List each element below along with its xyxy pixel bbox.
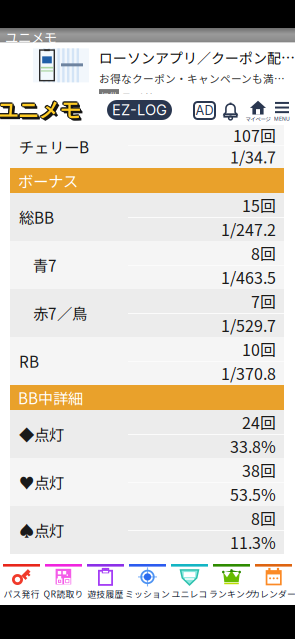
button[interactable]: カレンダー	[252, 557, 294, 605]
staticText: ユニメモ	[0, 96, 81, 122]
staticText: マイページ	[245, 115, 270, 123]
staticText: 15回	[242, 193, 276, 217]
staticText: パス発行	[3, 587, 39, 600]
button[interactable]: ミッション	[126, 557, 168, 605]
staticText: 総BB	[19, 206, 54, 228]
staticText: 11.3%	[230, 530, 276, 554]
button[interactable]: MENU	[271, 100, 293, 123]
staticText: ユニメモ	[0, 97, 81, 123]
button[interactable]: QR読取り	[42, 557, 84, 605]
staticText: 7回	[251, 289, 276, 313]
staticText: ユニメモ	[0, 98, 81, 124]
staticText: 提供	[101, 90, 117, 102]
staticText: 107回	[233, 123, 276, 147]
button[interactable]: マイページ	[243, 100, 273, 123]
button[interactable]: 107回	[10, 125, 284, 168]
staticText: ユニメモ	[0, 97, 82, 123]
staticText: 赤7／鳥	[33, 302, 87, 324]
button[interactable]: ユニレコ	[168, 557, 210, 605]
staticText: ユニメモ	[0, 96, 80, 122]
staticText: 38回	[242, 458, 276, 482]
staticText: 遊技履歴	[87, 587, 123, 600]
staticText: 1/370.8	[221, 361, 276, 385]
button[interactable]: ローソンアプリ／クーポン配…	[0, 46, 295, 94]
staticText: MENU	[274, 116, 290, 122]
staticText: ユニメモ	[0, 97, 80, 123]
button[interactable]: 10回	[10, 337, 284, 385]
staticText: 24回	[242, 410, 276, 434]
staticText: 8回	[251, 241, 276, 265]
button[interactable]: 24回	[10, 410, 284, 458]
button[interactable]: 8回	[10, 506, 284, 554]
button[interactable]: ユニメモ	[5, 98, 73, 122]
staticText: 1/247.2	[221, 217, 276, 241]
staticText: ♠点灯	[19, 519, 64, 541]
staticText: ユニメモ	[0, 98, 82, 124]
staticText: お得なクーポン・キャンペーンも満…	[99, 71, 285, 86]
staticText: RB	[19, 350, 39, 372]
staticText: ローソンアプリ／クーポン配…	[99, 47, 295, 68]
button[interactable]: Ad	[194, 102, 215, 119]
button[interactable]: 38回	[10, 458, 284, 506]
staticText: 1/463.5	[221, 265, 276, 289]
staticText: ♥点灯	[19, 471, 64, 493]
button[interactable]: 7回	[10, 289, 284, 337]
staticText: ランキング	[209, 587, 254, 600]
staticText: ローソン	[122, 90, 158, 102]
staticText: カレンダー	[251, 587, 295, 600]
button[interactable]: 8回	[10, 241, 284, 289]
button[interactable]: ランキング	[210, 557, 252, 605]
staticText: ユニレコ	[171, 587, 207, 600]
staticText: チェリーB	[19, 135, 89, 158]
staticText: ミッション	[125, 587, 170, 600]
button[interactable]: パス発行	[0, 557, 42, 605]
staticText: ユニメモ	[0, 100, 84, 126]
staticText: AD	[195, 103, 213, 118]
button[interactable]: Notifications	[223, 102, 238, 120]
button[interactable]: EZ-LOG	[107, 100, 172, 120]
staticText: ユニメモ	[0, 99, 83, 125]
staticText: QR読取り	[43, 587, 83, 600]
staticText: EZ-LOG	[112, 101, 167, 119]
button[interactable]: 15回	[10, 193, 284, 241]
staticText: ボーナス	[18, 169, 78, 192]
button[interactable]: 遊技履歴	[84, 557, 126, 605]
staticText: ユニメモ	[5, 27, 57, 47]
staticText: 10回	[242, 337, 276, 361]
staticText: 53.5%	[230, 482, 276, 506]
staticText: 1/34.7	[230, 145, 276, 168]
staticText: BB中詳細	[18, 386, 83, 409]
staticText: 33.8%	[230, 434, 276, 458]
staticText: 1/529.7	[221, 313, 276, 337]
staticText: ◆点灯	[19, 423, 64, 445]
staticText: 8回	[251, 506, 276, 530]
staticText: 青7	[33, 254, 57, 276]
